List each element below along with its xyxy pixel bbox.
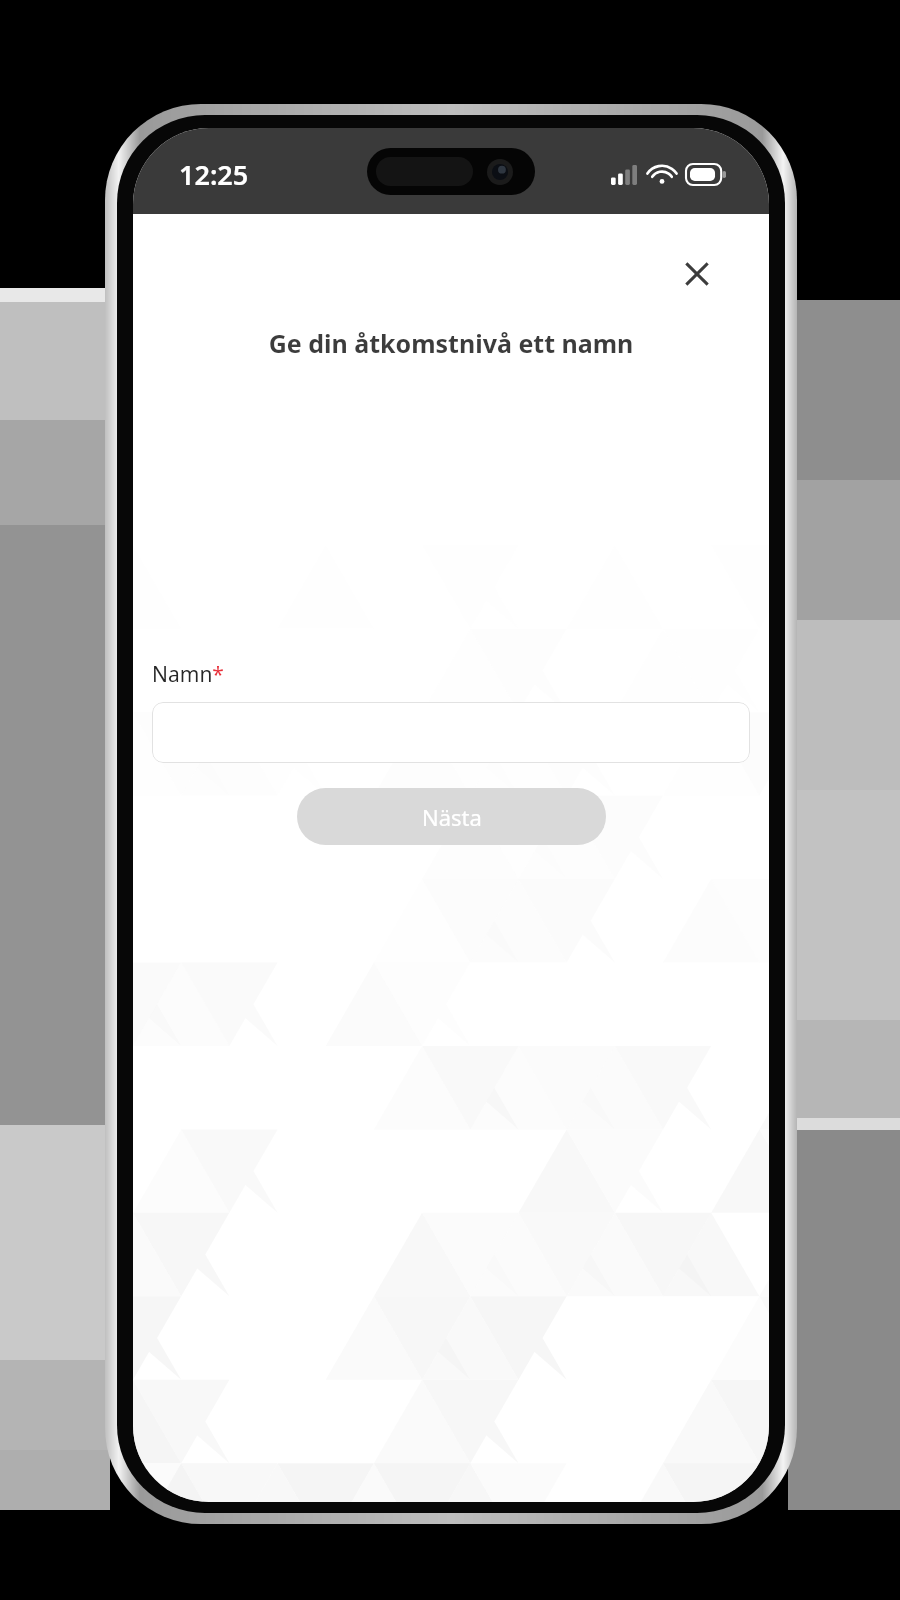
staticText: Ge din åtkomstnivå ett namn (153, 326, 749, 360)
button[interactable] (152, 702, 750, 763)
staticText: 12:25 (179, 156, 249, 193)
button[interactable]: Nästa (297, 788, 606, 845)
staticText: Namn* (152, 660, 224, 689)
staticText: Nästa (422, 802, 482, 832)
button[interactable]: Stäng (671, 248, 723, 300)
